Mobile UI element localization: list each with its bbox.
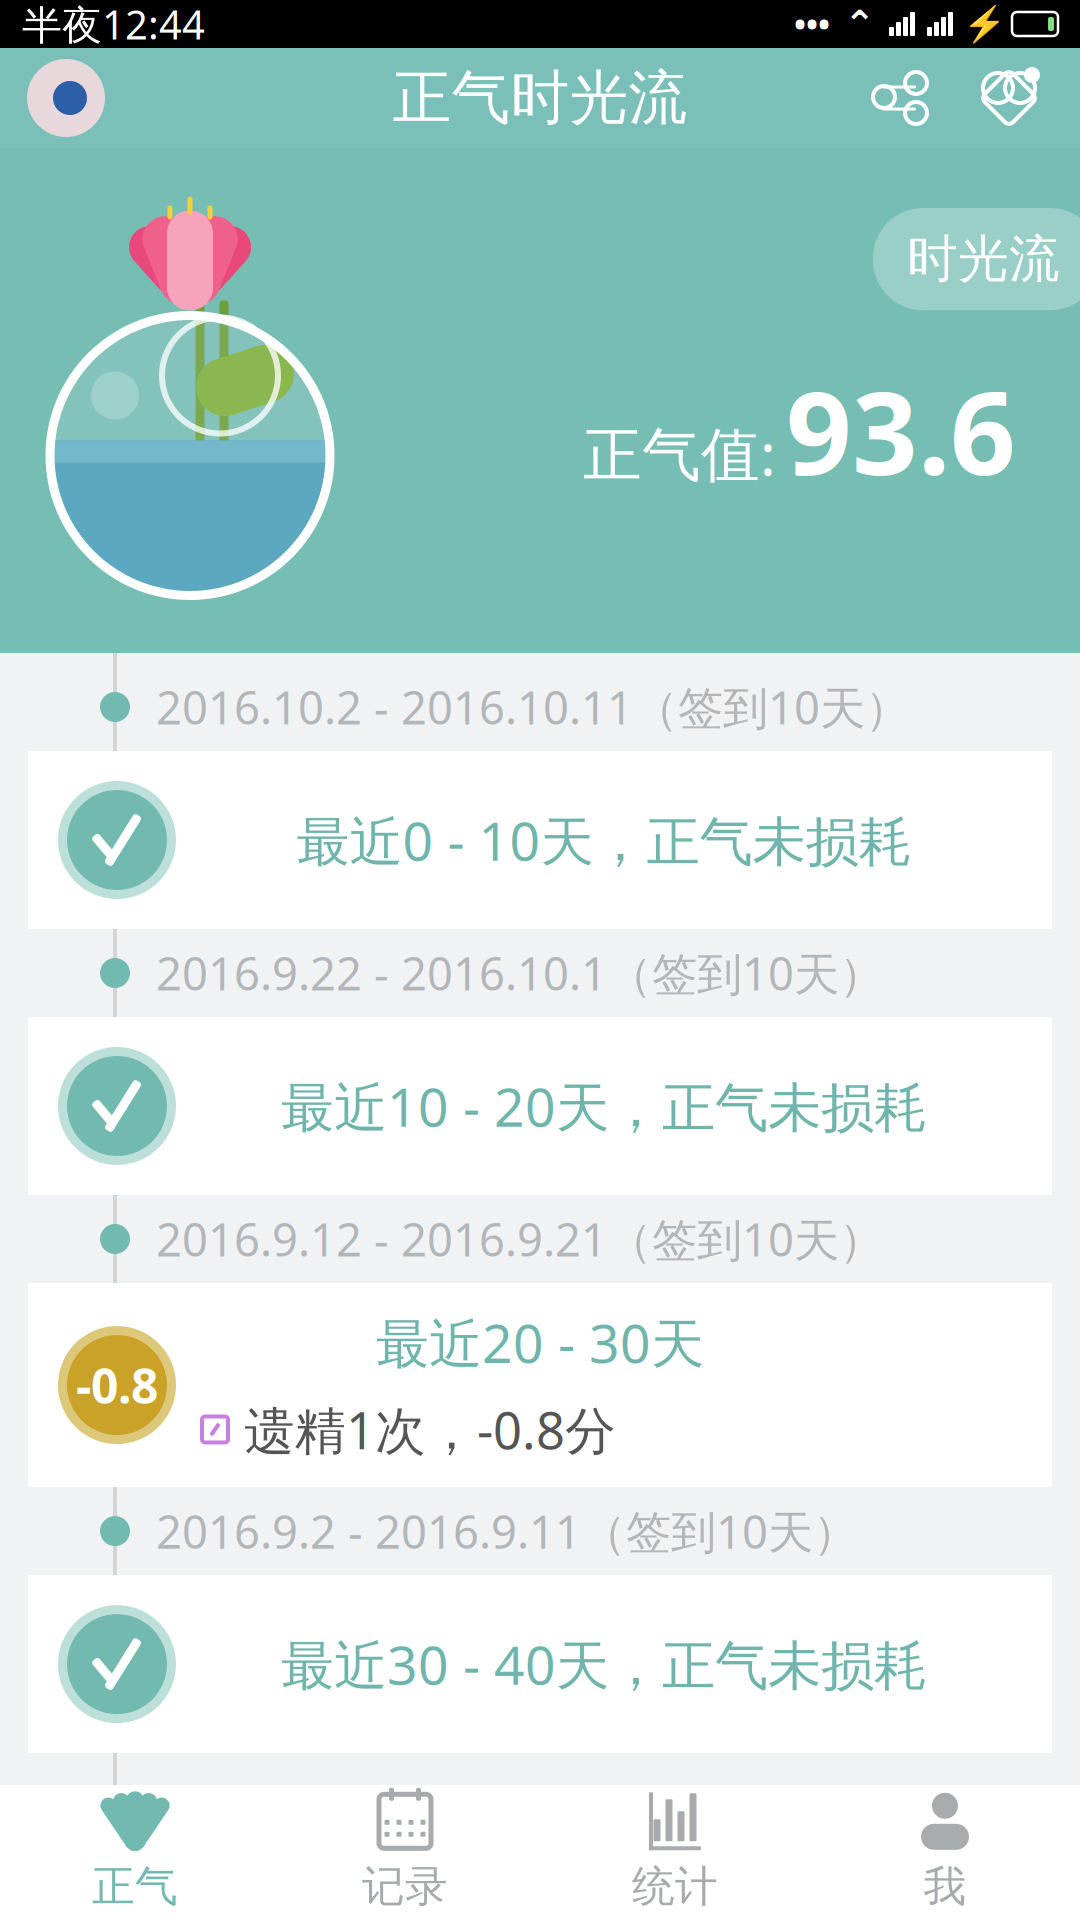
button[interactable]: 最近20 - 30天 (28, 1283, 1052, 1487)
staticText: 正气 (92, 1860, 178, 1913)
button[interactable]: 最近0 - 10天，正气未损耗 (28, 751, 1052, 929)
staticText: 最近20 - 30天 (376, 1307, 704, 1378)
staticText: 记录 (362, 1860, 448, 1913)
staticText: 遗精1次，-0.8分 (244, 1396, 616, 1463)
staticText: 2016.9.2 - 2016.9.11（签到10天） (156, 1501, 858, 1561)
staticText: 统计 (632, 1860, 718, 1913)
button[interactable]: 最近30 - 40天，正气未损耗 (28, 1575, 1052, 1753)
staticText: 2016.9.22 - 2016.10.1（签到10天） (156, 943, 884, 1003)
staticText: ⌃ (844, 3, 875, 45)
staticText: 最近0 - 10天，正气未损耗 (296, 805, 911, 875)
staticText: ⚡ (963, 4, 1006, 44)
staticText: 半夜12:44 (22, 0, 205, 50)
staticText: 时光流 (907, 228, 1060, 290)
button[interactable]: 统计 (540, 1785, 810, 1920)
button[interactable]: 最近10 - 20天，正气未损耗 (28, 1017, 1052, 1195)
staticText: 最近30 - 40天，正气未损耗 (281, 1629, 927, 1699)
button[interactable]: Profile (16, 48, 116, 148)
button[interactable]: 记录 (270, 1785, 540, 1920)
staticText: 最近10 - 20天，正气未损耗 (281, 1071, 927, 1141)
button[interactable]: 正气 (0, 1785, 270, 1920)
staticText: 正气值: (583, 414, 776, 492)
staticText: 2016.10.2 - 2016.10.11（签到10天） (156, 677, 910, 737)
staticText: ••• (794, 3, 830, 45)
staticText: 我 (923, 1860, 966, 1913)
button[interactable]: Favorites (954, 48, 1064, 148)
staticText: 正气时光流 (392, 62, 687, 134)
staticText: 93.6 (786, 354, 1016, 507)
button[interactable]: Share (844, 48, 954, 148)
staticText: 2016.9.12 - 2016.9.21（签到10天） (156, 1209, 884, 1269)
button[interactable]: 时光流 (873, 208, 1080, 310)
button[interactable]: 我 (810, 1785, 1080, 1920)
staticText: -0.8 (76, 1353, 158, 1417)
